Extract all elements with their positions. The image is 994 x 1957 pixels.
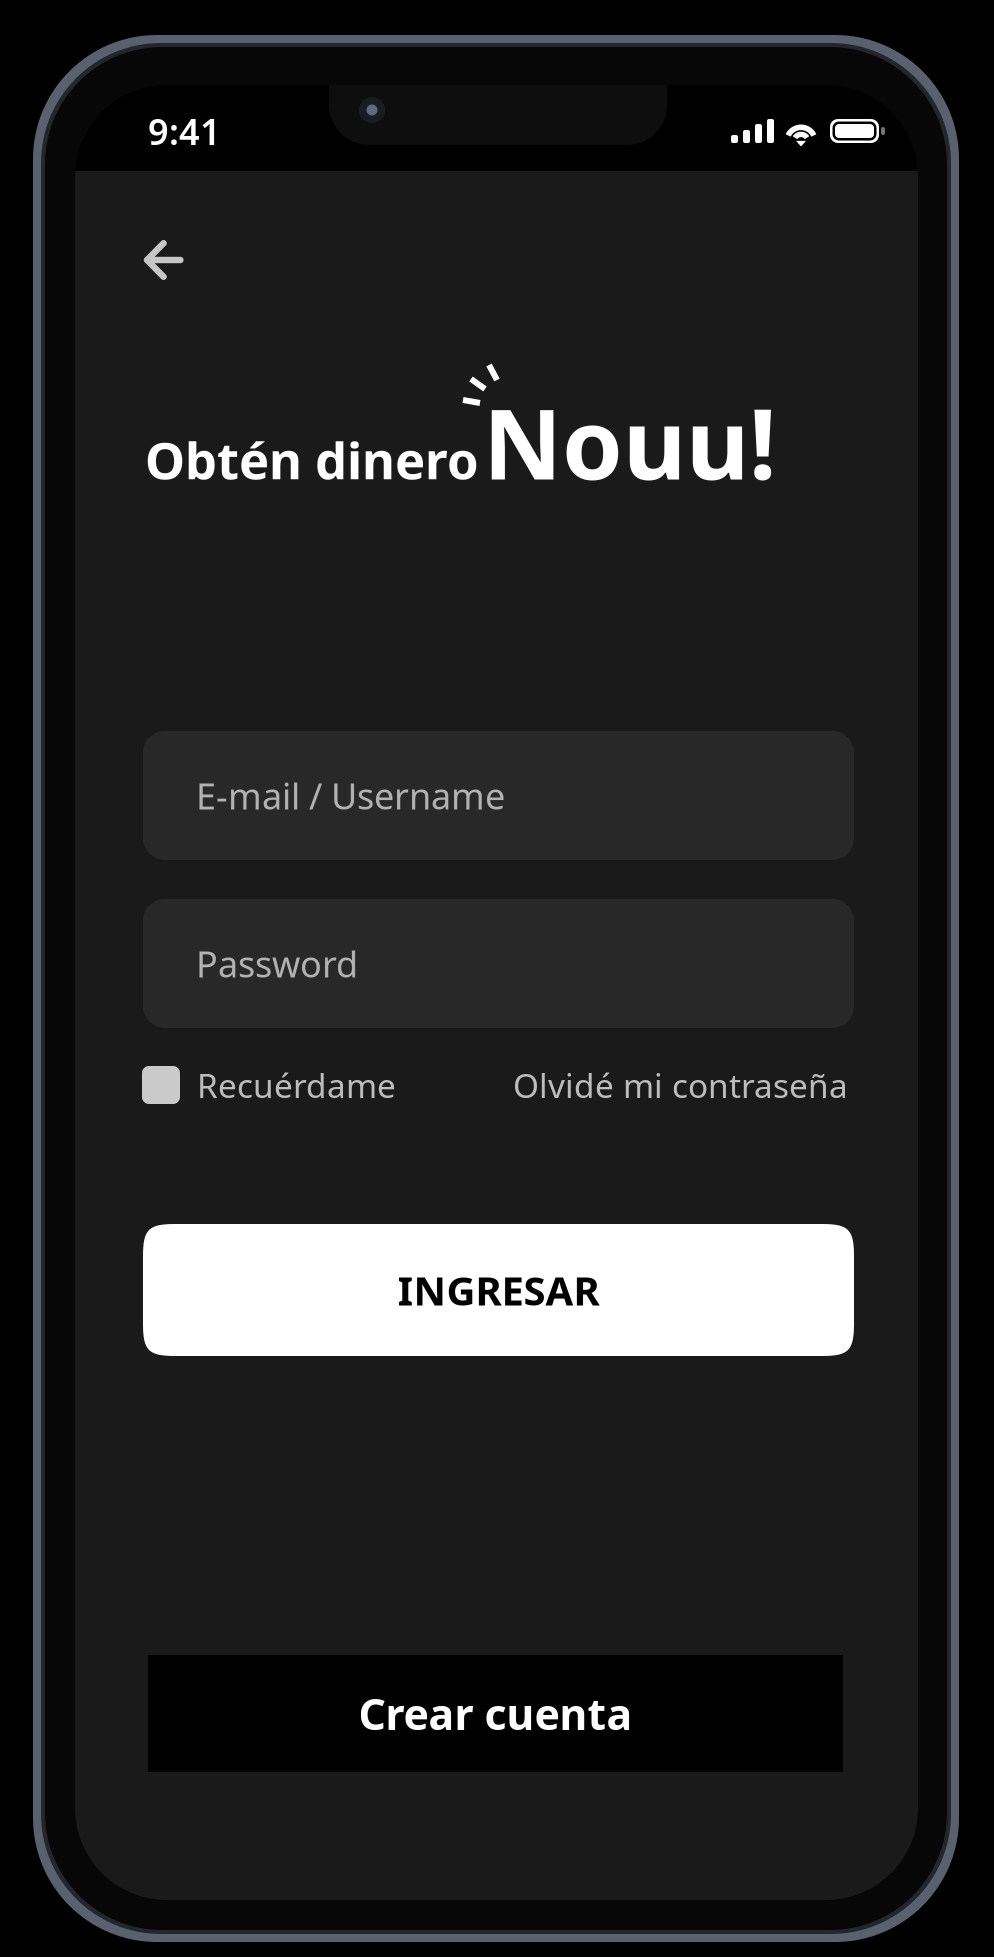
staticText: Recuérdame bbox=[197, 1063, 396, 1107]
staticText: 9:41 bbox=[148, 107, 221, 155]
staticText: Password bbox=[196, 940, 358, 987]
button[interactable]: INGRESAR bbox=[143, 1224, 854, 1356]
staticText: Crear cuenta bbox=[358, 1685, 632, 1742]
button[interactable]: Recuérdame bbox=[142, 1056, 396, 1114]
button[interactable]: Crear cuenta bbox=[148, 1655, 843, 1772]
staticText: Olvidé mi contraseña bbox=[513, 1063, 848, 1107]
staticText: Nouu! bbox=[483, 377, 776, 506]
staticText: Obtén dinero bbox=[145, 426, 479, 493]
staticText: E-mail / Username bbox=[196, 772, 505, 819]
button[interactable]: Back bbox=[75, 171, 218, 313]
staticText: INGRESAR bbox=[397, 1263, 599, 1316]
button[interactable]: Olvidé mi contraseña bbox=[513, 1056, 848, 1114]
